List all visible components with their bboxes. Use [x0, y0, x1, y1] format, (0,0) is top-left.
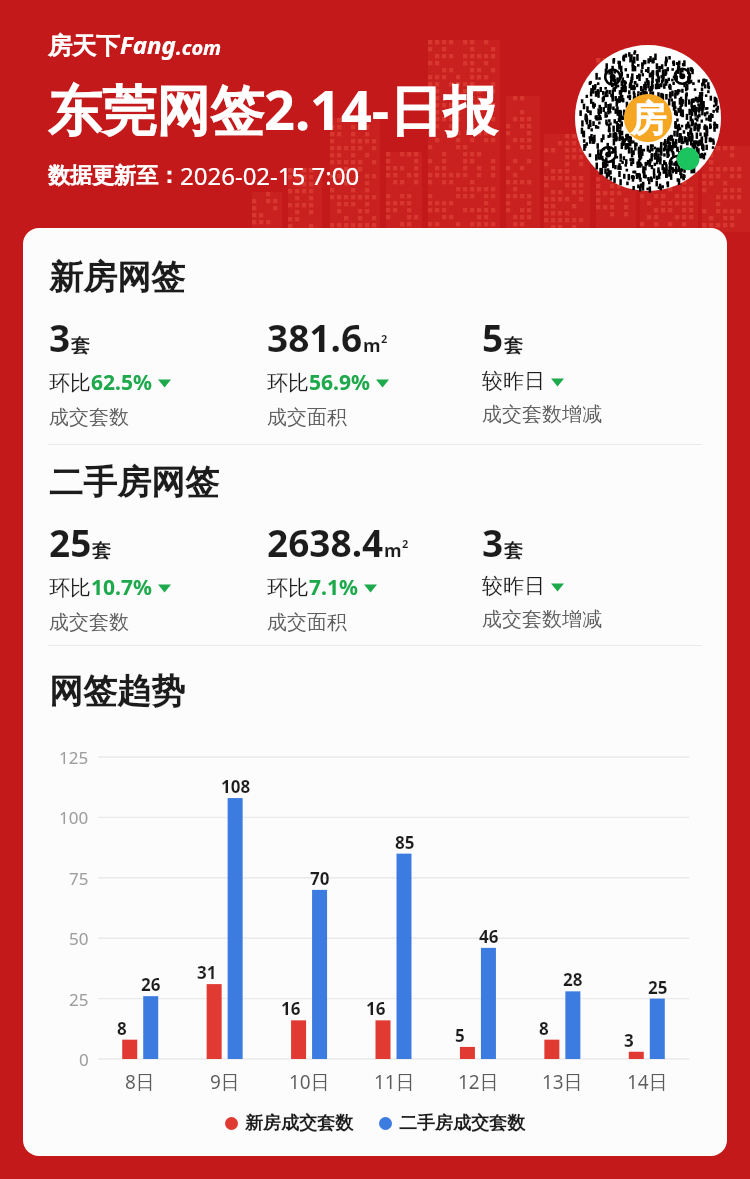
staticText: 环比	[49, 575, 91, 601]
staticText: 环比	[267, 370, 309, 396]
staticText: 二手房成交套数	[399, 1112, 525, 1135]
staticText: 3	[482, 517, 504, 567]
button[interactable]: 381.6	[267, 312, 482, 430]
staticText: 25	[69, 988, 89, 1011]
staticText: 5	[455, 1024, 465, 1047]
staticText: 8	[117, 1017, 127, 1040]
staticText: 成交套数	[49, 610, 129, 635]
staticText: 100	[59, 806, 89, 829]
staticText: 56.9%	[309, 368, 370, 397]
staticText: 房	[630, 96, 666, 141]
staticText: 成交面积	[267, 405, 347, 430]
staticText: 85	[395, 831, 415, 854]
button[interactable]: 3	[49, 312, 267, 430]
staticText: 新房成交套数	[245, 1112, 353, 1135]
staticText: 成交套数增减	[482, 402, 602, 427]
staticText: 成交面积	[267, 610, 347, 635]
staticText: 3	[624, 1029, 634, 1052]
staticText: 3	[49, 312, 71, 362]
staticText: 16	[281, 997, 301, 1020]
staticText: 成交套数增减	[482, 607, 602, 632]
staticText: 16	[366, 997, 386, 1020]
staticText: 50	[69, 927, 89, 950]
staticText: 7.1%	[309, 573, 358, 602]
staticText: 环比	[49, 370, 91, 396]
staticText: 较昨日	[482, 368, 545, 394]
staticText: 26	[141, 973, 161, 996]
staticText: 套	[504, 539, 523, 563]
staticText: 数据更新至：	[48, 162, 180, 190]
staticText: 二手房网签	[49, 461, 219, 504]
staticText: 2	[381, 331, 388, 346]
staticText: 108	[221, 775, 251, 798]
staticText: 70	[310, 867, 330, 890]
button[interactable]: 小程序二维码	[575, 45, 721, 191]
staticText: 2	[402, 536, 409, 551]
staticText: 125	[59, 746, 89, 769]
staticText: 网签趋势	[49, 670, 185, 713]
staticText: 14日	[627, 1069, 668, 1095]
button[interactable]: 3	[482, 517, 727, 632]
staticText: 10日	[289, 1069, 330, 1095]
staticText: .com	[176, 34, 222, 61]
staticText: m	[363, 333, 381, 358]
staticText: 环比	[267, 575, 309, 601]
staticText: 套	[71, 334, 90, 358]
staticText: 5	[482, 312, 504, 362]
staticText: 新房网签	[49, 256, 185, 299]
staticText: 8	[539, 1017, 549, 1040]
staticText: 成交套数	[49, 405, 129, 430]
staticText: 0	[79, 1048, 89, 1071]
staticText: 25	[648, 976, 668, 999]
button[interactable]: 5	[482, 312, 727, 427]
staticText: 套	[92, 539, 111, 563]
staticText: 75	[69, 867, 89, 890]
button[interactable]: 2638.4	[267, 517, 482, 635]
staticText: 31	[197, 961, 217, 984]
staticText: 8日	[125, 1069, 155, 1095]
staticText: 2638.4	[267, 517, 384, 567]
staticText: 2026-02-15 7:00	[180, 159, 360, 192]
staticText: 东莞网签2.14-日报	[48, 72, 498, 146]
button[interactable]: 25	[49, 517, 267, 635]
staticText: 46	[479, 925, 499, 948]
staticText: 12日	[458, 1069, 499, 1095]
staticText: 381.6	[267, 312, 363, 362]
staticText: Fang	[120, 28, 176, 61]
staticText: 9日	[210, 1069, 240, 1095]
staticText: 28	[563, 968, 583, 991]
staticText: 较昨日	[482, 573, 545, 599]
staticText: m	[384, 538, 402, 563]
staticText: 房天下	[48, 31, 120, 61]
staticText: 25	[49, 517, 92, 567]
staticText: 13日	[542, 1069, 583, 1095]
button[interactable]: 新房成交套数	[225, 1112, 353, 1135]
staticText: 11日	[374, 1069, 415, 1095]
staticText: 套	[504, 334, 523, 358]
button[interactable]: 二手房成交套数	[379, 1112, 525, 1135]
staticText: 10.7%	[91, 573, 152, 602]
staticText: 62.5%	[91, 368, 152, 397]
